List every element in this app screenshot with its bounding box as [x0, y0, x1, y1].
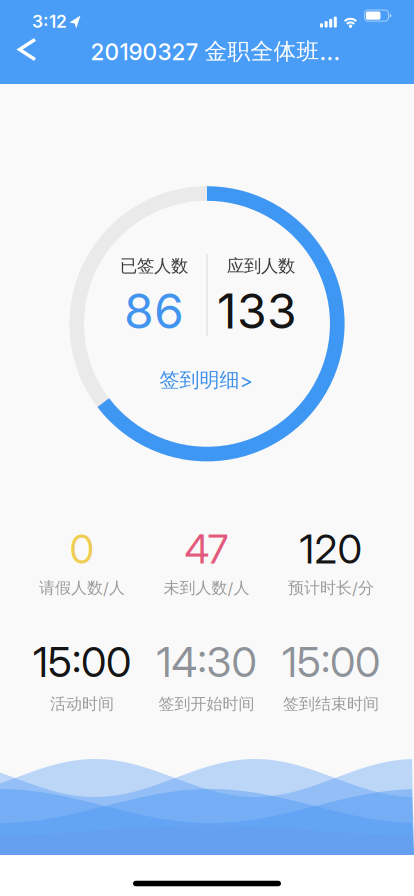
staticText: 请假人数/人 [39, 578, 125, 598]
button[interactable]: 签到明细> [159, 368, 252, 392]
staticText: 15:00 [282, 638, 380, 686]
staticText: 已签人数 [120, 255, 188, 277]
staticText: 120 [299, 525, 362, 573]
staticText: 签到开始时间 [158, 694, 254, 714]
staticText: 47 [184, 525, 228, 573]
staticText: 活动时间 [50, 694, 114, 714]
staticText: 15:00 [33, 638, 131, 686]
staticText: 14:30 [156, 638, 256, 686]
staticText: 86 [124, 283, 184, 339]
staticText: 签到明细> [159, 368, 252, 392]
button[interactable]: Back [9, 38, 43, 61]
staticText: 应到人数 [227, 255, 295, 277]
staticText: 133 [217, 283, 297, 339]
staticText: 0 [69, 525, 94, 573]
staticText: 3:12 [32, 11, 67, 32]
staticText: 未到人数/人 [163, 578, 249, 598]
staticText: 签到结束时间 [283, 694, 379, 714]
staticText: 预计时长/分 [288, 578, 374, 598]
staticText: 20190327 金职全体班... [90, 38, 340, 65]
